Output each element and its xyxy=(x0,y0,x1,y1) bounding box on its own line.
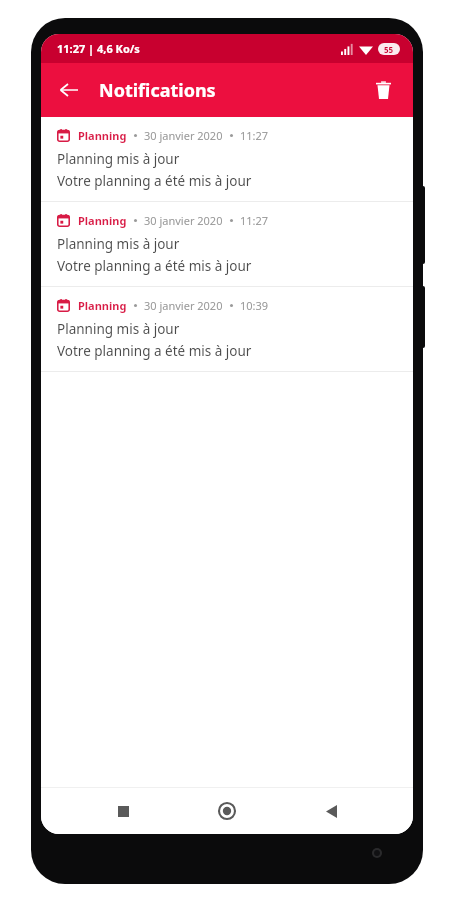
staticText: Planning mis à jour xyxy=(57,235,180,253)
button[interactable]: Recent apps xyxy=(101,789,145,833)
staticText: 30 janvier 2020 xyxy=(144,128,223,143)
staticText: Votre planning a été mis à jour xyxy=(57,172,252,190)
staticText: Planning xyxy=(78,128,127,143)
staticText: Votre planning a été mis à jour xyxy=(57,342,252,360)
button[interactable]: Back xyxy=(309,789,353,833)
button[interactable]: Home xyxy=(205,789,249,833)
staticText: 11:27 xyxy=(240,128,269,143)
button[interactable]: Back xyxy=(47,68,91,112)
button[interactable]: Planning xyxy=(41,117,413,201)
button[interactable]: Planning xyxy=(41,202,413,286)
staticText: 30 janvier 2020 xyxy=(144,213,223,228)
staticText: 11:27 | 4,6 Ko/s xyxy=(57,41,140,56)
staticText: Planning mis à jour xyxy=(57,320,180,338)
button[interactable]: Planning xyxy=(41,287,413,371)
staticText: 11:27 xyxy=(240,213,269,228)
button[interactable]: Delete all notifications xyxy=(361,68,405,112)
staticText: 30 janvier 2020 xyxy=(144,298,223,313)
staticText: 10:39 xyxy=(240,298,269,313)
staticText: Planning mis à jour xyxy=(57,150,180,168)
staticText: Planning xyxy=(78,298,127,313)
staticText: Votre planning a été mis à jour xyxy=(57,257,252,275)
staticText: Planning xyxy=(78,213,127,228)
staticText: Notifications xyxy=(99,78,216,103)
staticText: 55 xyxy=(384,44,394,55)
